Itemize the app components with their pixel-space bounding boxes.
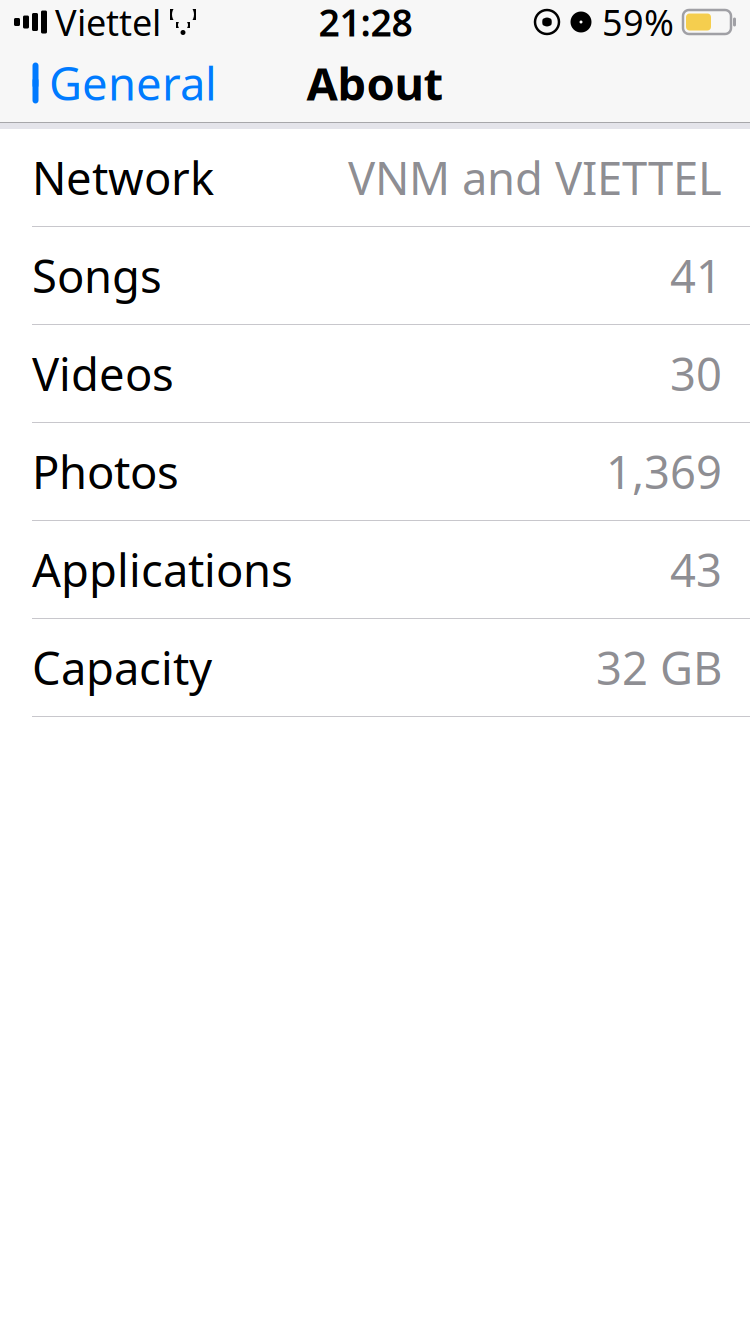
button[interactable]: Photos — [0, 423, 750, 521]
staticText: About — [306, 53, 443, 113]
staticText: 21:28 — [318, 0, 412, 47]
staticText: Viettel — [55, 0, 161, 46]
button[interactable]: Capacity — [0, 619, 750, 717]
button[interactable]: Applications — [0, 521, 750, 619]
staticText: 30 — [670, 343, 722, 404]
staticText: General — [49, 53, 217, 113]
staticText: 41 — [670, 245, 722, 306]
staticText: Videos — [32, 343, 174, 404]
staticText: 32 GB — [596, 637, 722, 698]
staticText: Songs — [32, 245, 162, 306]
staticText: 59% — [602, 0, 674, 46]
staticText: Network — [32, 147, 214, 208]
button[interactable]: Network — [0, 129, 750, 227]
staticText: Photos — [32, 441, 179, 502]
button[interactable]: Videos — [0, 325, 750, 423]
button[interactable]: General — [0, 43, 217, 123]
staticText: Capacity — [32, 637, 212, 698]
button[interactable]: Songs — [0, 227, 750, 325]
staticText: VNM and VIETTEL — [348, 147, 722, 208]
staticText: Applications — [32, 539, 293, 600]
staticText: 43 — [670, 539, 722, 600]
staticText: 1,369 — [606, 441, 722, 502]
